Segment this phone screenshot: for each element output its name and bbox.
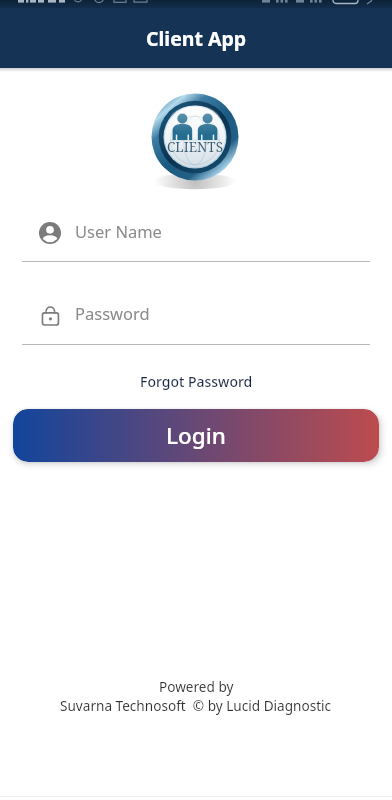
button[interactable]: Password (22, 290, 370, 346)
other: Password (39, 304, 61, 326)
staticText: Suvarna Technosoft © by Lucid Diagnostic (60, 696, 332, 715)
staticText: Client App (146, 25, 247, 52)
staticText: Forgot Password (140, 372, 253, 391)
other: User name (39, 222, 61, 244)
button[interactable]: Login (13, 409, 379, 462)
staticText: Powered by (159, 677, 234, 696)
staticText: User Name (75, 220, 162, 242)
staticText: Password (75, 302, 150, 324)
button[interactable]: Forgot Password (128, 368, 265, 395)
button[interactable]: User name (22, 208, 370, 263)
staticText: Login (166, 420, 226, 451)
staticText: CLIENTS (167, 138, 223, 156)
